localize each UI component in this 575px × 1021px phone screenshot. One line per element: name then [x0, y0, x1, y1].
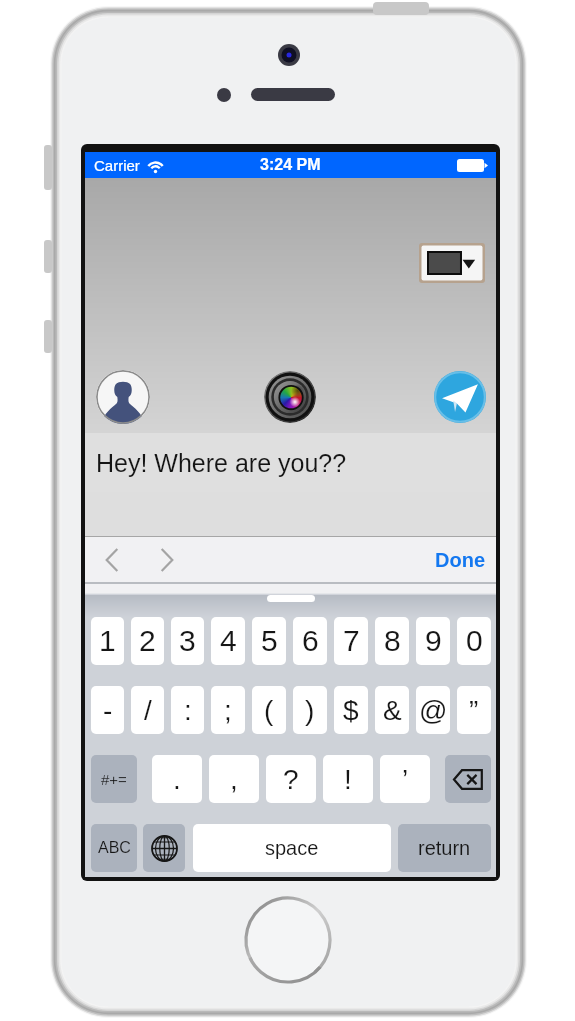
- button[interactable]: space: [193, 824, 391, 872]
- staticText: return: [418, 837, 471, 859]
- staticText: /: [144, 695, 152, 726]
- button[interactable]: 3: [171, 617, 204, 665]
- staticText: Done: [435, 549, 485, 571]
- button[interactable]: &: [375, 686, 409, 734]
- button[interactable]: :: [171, 686, 204, 734]
- staticText: ”: [469, 695, 479, 726]
- button[interactable]: !: [323, 755, 373, 803]
- staticText: 1: [99, 624, 116, 658]
- button[interactable]: ?: [266, 755, 316, 803]
- button[interactable]: .: [152, 755, 202, 803]
- button[interactable]: /: [131, 686, 164, 734]
- button[interactable]: ”: [457, 686, 491, 734]
- staticText: Hey! Where are you??: [96, 449, 347, 477]
- button[interactable]: ;: [211, 686, 245, 734]
- button[interactable]: Next field: [154, 547, 180, 573]
- staticText: !: [344, 764, 352, 795]
- button[interactable]: 1: [91, 617, 124, 665]
- staticText: (: [264, 695, 274, 726]
- staticText: ?: [283, 764, 299, 795]
- button[interactable]: 5: [252, 617, 286, 665]
- staticText: 7: [343, 624, 360, 658]
- staticText: space: [265, 837, 319, 859]
- staticText: #+=: [101, 771, 127, 788]
- button[interactable]: 4: [211, 617, 245, 665]
- staticText: Carrier: [94, 157, 140, 174]
- button[interactable]: 2: [131, 617, 164, 665]
- staticText: 9: [425, 624, 442, 658]
- staticText: 3: [179, 624, 196, 658]
- button[interactable]: Done: [406, 537, 496, 583]
- button[interactable]: Switch keyboard: [143, 824, 185, 872]
- staticText: 0: [466, 624, 483, 658]
- staticText: 4: [220, 624, 237, 658]
- button[interactable]: Contact: [96, 370, 150, 424]
- button[interactable]: 0: [457, 617, 491, 665]
- staticText: ,: [230, 764, 238, 795]
- staticText: -: [103, 695, 113, 726]
- staticText: .: [173, 764, 181, 795]
- staticText: @: [419, 695, 448, 726]
- button[interactable]: ,: [209, 755, 259, 803]
- button[interactable]: -: [91, 686, 124, 734]
- staticText: ’: [402, 764, 409, 795]
- staticText: 2: [139, 624, 156, 658]
- staticText: 8: [384, 624, 401, 658]
- button[interactable]: 8: [375, 617, 409, 665]
- button[interactable]: #+=: [91, 755, 137, 803]
- button[interactable]: (: [252, 686, 286, 734]
- button[interactable]: @: [416, 686, 450, 734]
- button[interactable]: Previous field: [99, 547, 125, 573]
- staticText: ABC: [98, 839, 131, 857]
- staticText: 6: [302, 624, 319, 658]
- staticText: 5: [261, 624, 278, 658]
- button[interactable]: ): [293, 686, 327, 734]
- button[interactable]: return: [398, 824, 491, 872]
- staticText: ): [305, 695, 315, 726]
- button[interactable]: 7: [334, 617, 368, 665]
- button[interactable]: Color picker: [419, 243, 485, 283]
- button[interactable]: Camera: [264, 371, 316, 423]
- staticText: 3:24 PM: [260, 156, 321, 174]
- staticText: ;: [224, 695, 232, 726]
- button[interactable]: $: [334, 686, 368, 734]
- staticText: :: [184, 695, 192, 726]
- button[interactable]: ABC: [91, 824, 137, 872]
- button[interactable]: 6: [293, 617, 327, 665]
- button[interactable]: ’: [380, 755, 430, 803]
- button[interactable]: 9: [416, 617, 450, 665]
- button[interactable]: Backspace: [445, 755, 491, 803]
- staticText: &: [383, 695, 402, 726]
- staticText: $: [343, 695, 359, 726]
- button[interactable]: Send via Telegram: [434, 371, 486, 423]
